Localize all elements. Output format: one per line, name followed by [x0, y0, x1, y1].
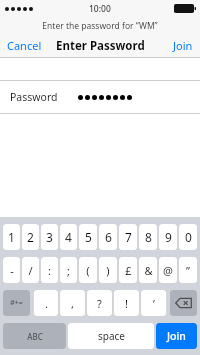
- staticText: Join: [173, 38, 193, 53]
- staticText: 5: [85, 229, 92, 245]
- button[interactable]: !: [114, 290, 139, 316]
- button[interactable]: .: [34, 290, 58, 316]
- button[interactable]: Join: [166, 34, 200, 57]
- staticText: 8: [145, 229, 152, 245]
- button[interactable]: Join: [156, 323, 197, 349]
- staticText: 2: [27, 229, 34, 245]
- button[interactable]: ;: [60, 257, 77, 283]
- button[interactable]: 3: [41, 224, 58, 250]
- staticText: Enter the password for “WM”: [42, 20, 158, 32]
- staticText: 0: [185, 229, 192, 245]
- staticText: ?: [97, 296, 102, 311]
- staticText: ): [106, 263, 110, 278]
- staticText: Password: [10, 90, 58, 104]
- staticText: -: [10, 263, 14, 278]
- button[interactable]: £: [119, 257, 137, 283]
- button[interactable]: space: [68, 323, 154, 349]
- staticText: Enter Password: [56, 38, 145, 54]
- button[interactable]: 7: [119, 224, 137, 250]
- button[interactable]: 6: [99, 224, 117, 250]
- button[interactable]: 0: [179, 224, 197, 250]
- button[interactable]: 2: [22, 224, 39, 250]
- button[interactable]: 1: [3, 224, 20, 250]
- staticText: @: [163, 263, 173, 278]
- button[interactable]: ”: [179, 257, 197, 283]
- staticText: 3: [46, 229, 53, 245]
- button[interactable]: &: [139, 257, 157, 283]
- button[interactable]: ,: [60, 290, 85, 316]
- button[interactable]: 9: [159, 224, 177, 250]
- staticText: 10:00: [89, 3, 111, 15]
- staticText: £: [125, 263, 132, 278]
- staticText: !: [125, 296, 128, 311]
- button[interactable]: 8: [139, 224, 157, 250]
- staticText: (: [86, 263, 90, 278]
- button[interactable]: 5: [79, 224, 97, 250]
- button[interactable]: Backspace: [170, 290, 197, 316]
- staticText: ;: [67, 263, 70, 278]
- staticText: 7: [125, 229, 132, 245]
- staticText: Cancel: [7, 38, 42, 53]
- button[interactable]: ABC: [3, 323, 66, 349]
- button[interactable]: ’: [141, 290, 166, 316]
- button[interactable]: Password: [0, 81, 200, 113]
- staticText: &: [144, 263, 153, 278]
- staticText: 9: [165, 229, 172, 245]
- button[interactable]: ?: [87, 290, 112, 316]
- staticText: ABC: [27, 331, 43, 342]
- staticText: 6: [105, 229, 112, 245]
- staticText: :: [48, 263, 51, 278]
- button[interactable]: Cancel: [0, 34, 49, 57]
- staticText: 1: [8, 229, 15, 245]
- staticText: Join: [167, 329, 186, 343]
- button[interactable]: ): [99, 257, 117, 283]
- button[interactable]: #+=: [3, 290, 30, 316]
- staticText: ’: [153, 296, 155, 311]
- staticText: ,: [71, 296, 74, 311]
- staticText: 4: [65, 229, 72, 245]
- button[interactable]: (: [79, 257, 97, 283]
- button[interactable]: 4: [60, 224, 77, 250]
- staticText: ”: [186, 263, 190, 278]
- staticText: space: [98, 329, 125, 343]
- button[interactable]: @: [159, 257, 177, 283]
- button[interactable]: -: [3, 257, 20, 283]
- button[interactable]: /: [22, 257, 39, 283]
- staticText: #+=: [10, 298, 23, 308]
- staticText: .: [45, 296, 48, 311]
- staticText: /: [28, 263, 33, 278]
- button[interactable]: :: [41, 257, 58, 283]
